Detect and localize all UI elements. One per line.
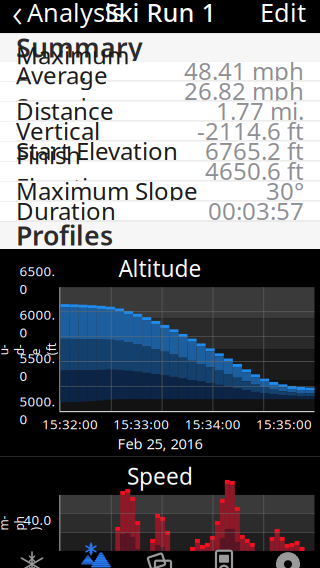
staticText: Feb 25, 2016 [117,434,202,453]
button[interactable]: Music [192,551,256,568]
staticText: Ski Run 1 [104,0,215,29]
button[interactable]: Distance [0,101,320,121]
staticText: 15:33:00 [113,415,169,433]
staticText: -2114.6 ft [197,115,304,147]
button[interactable]: Settings [256,551,320,568]
staticText: Maximum Slope [16,175,198,207]
staticText: 5500.0 [19,349,55,385]
button[interactable]: Finish Elevation [0,161,320,181]
staticText: 40.0 [23,511,51,529]
staticText: ‹ [12,0,23,39]
button[interactable]: ‹ [4,0,132,33]
staticText: 4650.6 ft [205,155,304,187]
button[interactable]: Average Speed [0,81,320,101]
staticText: Maximum Speed [16,39,129,103]
staticText: Profiles [16,217,113,253]
staticText: Start Elevation [16,135,178,167]
staticText: 15:35:00 [256,415,312,433]
staticText: Summary [16,29,143,65]
staticText: Distance [16,95,114,127]
button[interactable]: Maximum Speed [0,61,320,81]
button[interactable]: Start Elevation [0,141,320,161]
staticText: 6765.2 ft [205,135,304,167]
staticText: Altitude (ft) [5,285,17,413]
staticText: 5000.0 [19,393,55,428]
button[interactable]: Photos [128,551,192,568]
staticText: 15:34:00 [185,415,241,433]
staticText: Edit [260,0,306,29]
staticText: 6500.0 [19,262,55,298]
staticText: Speed [127,461,193,491]
staticText: (mph) [4,491,19,555]
staticText: Analysis [27,0,124,29]
staticText: 15:32:00 [42,415,98,433]
staticText: Vertical [16,115,100,147]
staticText: 48.41 mph [184,55,304,87]
button[interactable]: Edit [250,0,316,33]
staticText: 30° [266,175,304,207]
staticText: Average Speed [16,59,108,123]
staticText: 00:03:57 [208,195,304,227]
button[interactable]: Vertical [0,121,320,141]
staticText: Altitude [118,253,201,283]
button[interactable]: Ski Tracks [64,551,128,568]
button[interactable]: Track [0,551,64,568]
staticText: Duration [16,195,116,227]
button[interactable]: Maximum Slope [0,181,320,201]
staticText: 6000.0 [19,306,55,341]
staticText: Finish Elevation [16,139,118,203]
button[interactable]: Duration [0,201,320,221]
staticText: 26.82 mph [184,75,304,107]
staticText: 1.77 mi. [216,95,304,127]
